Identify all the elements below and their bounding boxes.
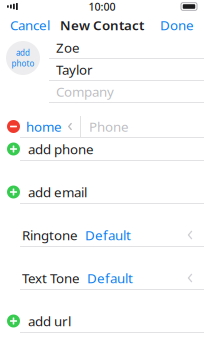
button[interactable]: Done [152, 11, 202, 39]
staticText: home [26, 118, 62, 135]
button[interactable]: Cancel [2, 11, 58, 39]
staticText: add url [28, 312, 71, 330]
staticText: Taylor [56, 61, 93, 78]
button[interactable]: add url [0, 310, 204, 333]
staticText: add [16, 47, 30, 58]
staticText: photo [11, 58, 34, 69]
staticText: Default [87, 269, 133, 287]
staticText: New Contact [60, 16, 144, 34]
button[interactable]: Ringtone [0, 224, 204, 247]
staticText: Company [56, 83, 114, 100]
staticText: add email [28, 183, 87, 201]
button[interactable]: add phone [0, 138, 204, 161]
staticText: 10:00 [88, 0, 115, 14]
staticText: add phone [28, 140, 94, 158]
staticText: Zoe [56, 39, 80, 56]
staticText: Cancel [10, 16, 50, 34]
staticText: Ringtone [22, 226, 78, 244]
button[interactable]: add [6, 41, 40, 75]
button[interactable]: Phone [81, 116, 204, 137]
button[interactable]: Text Tone [0, 267, 204, 290]
button[interactable]: Remove phone [0, 116, 26, 137]
staticText: Done [160, 16, 194, 34]
staticText: Phone [89, 118, 129, 135]
staticText: Text Tone [22, 269, 80, 287]
button[interactable]: home [26, 114, 73, 139]
button[interactable]: Company [49, 81, 204, 103]
button[interactable]: Taylor [49, 59, 204, 81]
button[interactable]: Zoe [49, 37, 204, 59]
staticText: Default [85, 226, 131, 244]
button[interactable]: add email [0, 181, 204, 204]
